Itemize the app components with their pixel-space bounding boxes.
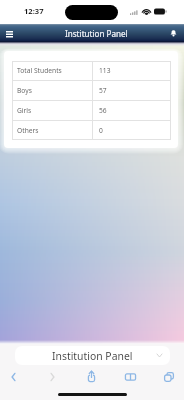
staticText: Total Students [17, 66, 62, 75]
staticText: 56 [99, 106, 107, 115]
staticText: 0 [99, 126, 103, 135]
staticText: Others [17, 126, 39, 135]
button[interactable]: Tabs [158, 367, 180, 386]
staticText: Institution Panel [52, 349, 133, 363]
staticText: Boys [17, 86, 32, 95]
staticText: 57 [99, 86, 107, 95]
button[interactable]: Share [80, 367, 102, 386]
button[interactable]: Notifications [166, 26, 180, 40]
button[interactable]: Forward [41, 367, 63, 386]
staticText: Girls [17, 106, 32, 115]
staticText: Institution Panel [65, 28, 128, 39]
button[interactable]: Institution Panel [15, 346, 170, 365]
staticText: 113 [99, 66, 111, 75]
staticText: 12:37 [24, 6, 44, 16]
button[interactable]: Back [2, 367, 24, 386]
button[interactable]: Menu [1, 25, 18, 42]
button[interactable]: Bookmarks [119, 367, 141, 386]
